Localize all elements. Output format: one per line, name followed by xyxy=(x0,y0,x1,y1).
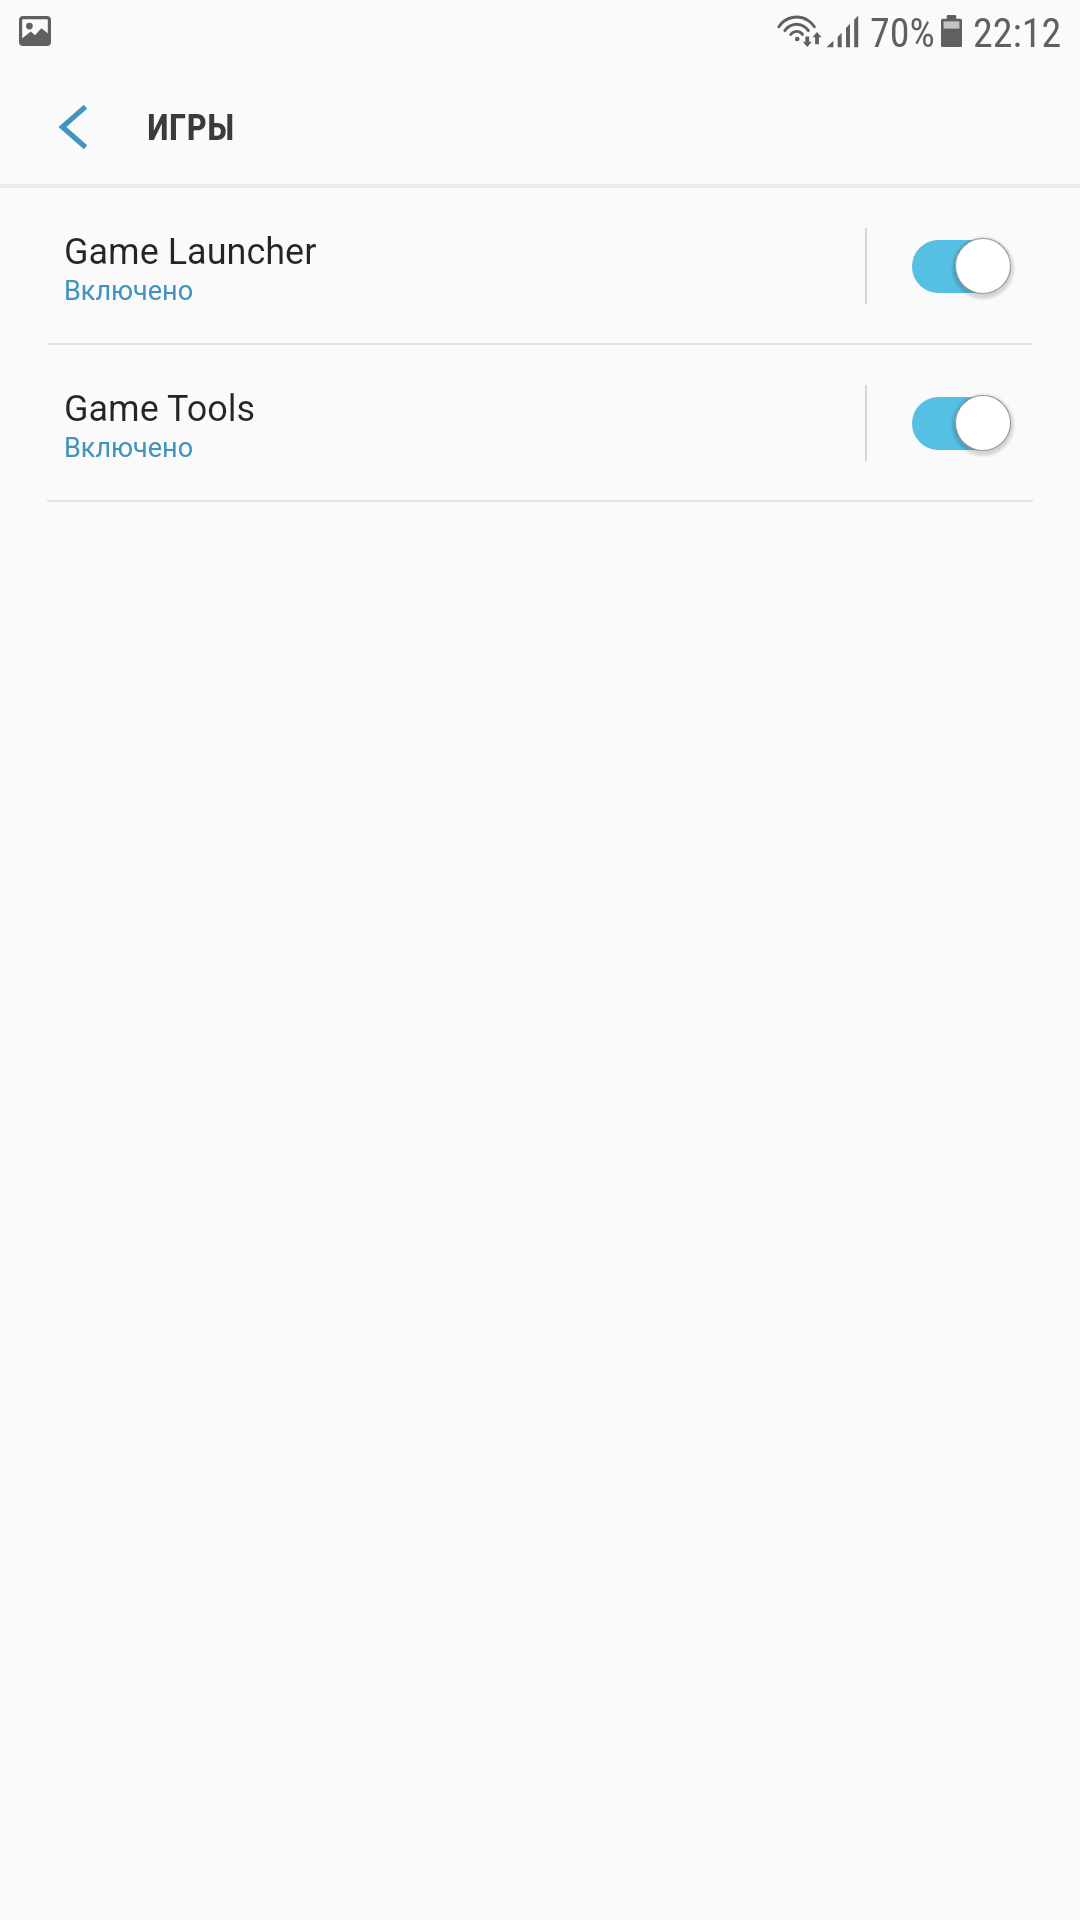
staticText: Включено xyxy=(64,432,194,464)
button[interactable]: Turn off Game Launcher xyxy=(912,236,1010,296)
button[interactable]: Game Launcher xyxy=(0,188,1080,343)
button[interactable]: Turn off Game Tools xyxy=(912,393,1010,453)
staticText: ИГРЫ xyxy=(147,107,235,149)
button[interactable]: Back xyxy=(31,85,115,169)
staticText: 70% xyxy=(870,10,935,57)
staticText: 22:12 xyxy=(973,10,1062,57)
staticText: Game Tools xyxy=(64,388,256,430)
staticText: Включено xyxy=(64,275,194,307)
button[interactable]: Game Tools xyxy=(0,345,1080,500)
staticText: Game Launcher xyxy=(64,231,317,273)
